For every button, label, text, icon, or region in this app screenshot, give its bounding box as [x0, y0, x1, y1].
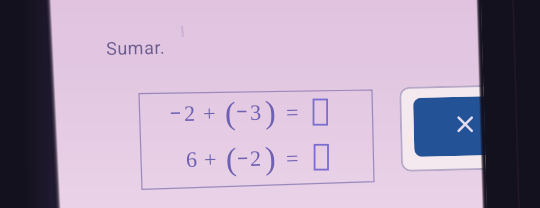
staticText: =	[286, 100, 299, 124]
staticText: =	[286, 146, 299, 170]
staticText: )	[264, 140, 277, 175]
button[interactable]	[399, 84, 503, 172]
staticText: 6	[186, 147, 197, 171]
staticText: )	[265, 94, 276, 129]
staticText: Sumar.	[106, 37, 166, 59]
staticText: (	[225, 95, 236, 130]
staticText: 2	[184, 101, 195, 125]
staticText: 3	[250, 100, 261, 124]
staticText: +	[204, 147, 217, 171]
staticText: 2	[250, 146, 261, 170]
staticText: (	[225, 141, 238, 176]
button[interactable]: Close	[413, 96, 494, 157]
staticText: +	[203, 101, 216, 125]
